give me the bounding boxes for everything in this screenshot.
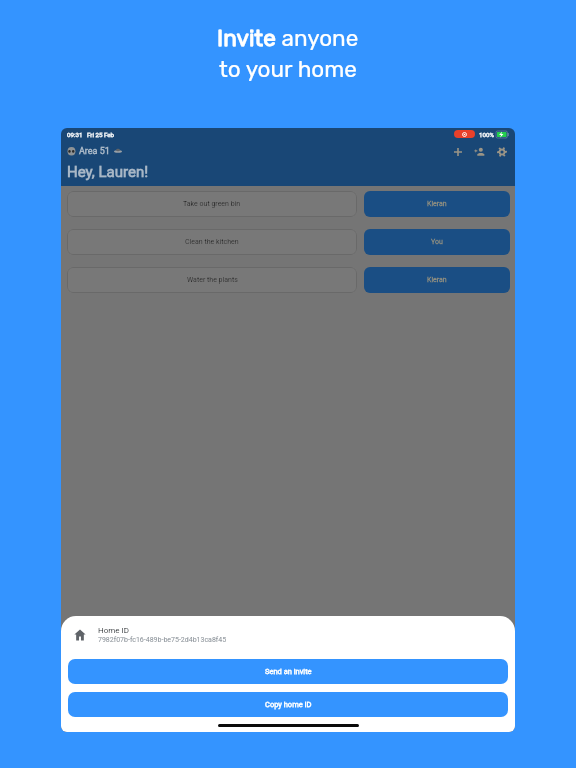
button[interactable]: Send an invite: [68, 659, 508, 684]
button[interactable]: Settings: [492, 142, 511, 161]
staticText: You: [431, 238, 443, 246]
button[interactable]: Copy home ID: [68, 692, 508, 717]
staticText: 7982f07b-fc16-489b-be75-2d4b13ca8f45: [98, 636, 227, 644]
staticText: Hey, Lauren!: [67, 163, 149, 181]
staticText: Send an invite: [265, 667, 312, 676]
button[interactable]: Kieran: [364, 267, 510, 293]
button[interactable]: Invite member: [470, 142, 489, 161]
staticText: Home ID: [98, 626, 129, 635]
button[interactable]: You: [364, 229, 510, 255]
staticText: to your home: [219, 56, 357, 83]
button[interactable]: Take out green bin: [67, 191, 357, 217]
button[interactable]: Add task: [448, 142, 467, 161]
button[interactable]: Clean the kitchen: [67, 229, 357, 255]
button[interactable]: Kieran: [364, 191, 510, 217]
staticText: Copy home ID: [265, 700, 312, 709]
staticText: Kieran: [427, 200, 447, 208]
button[interactable]: Water the plants: [67, 267, 357, 293]
staticText: Fri 25 Feb: [87, 131, 115, 138]
staticText: Take out green bin: [183, 200, 241, 208]
staticText: Clean the kitchen: [185, 238, 239, 246]
staticText: Kieran: [427, 276, 447, 284]
staticText: Water the plants: [187, 276, 238, 284]
staticText: Invite: [217, 25, 276, 52]
staticText: anyone: [276, 25, 359, 52]
staticText: 09:31: [67, 131, 83, 138]
staticText: 100%: [479, 131, 494, 138]
staticText: Area 51: [79, 146, 110, 157]
